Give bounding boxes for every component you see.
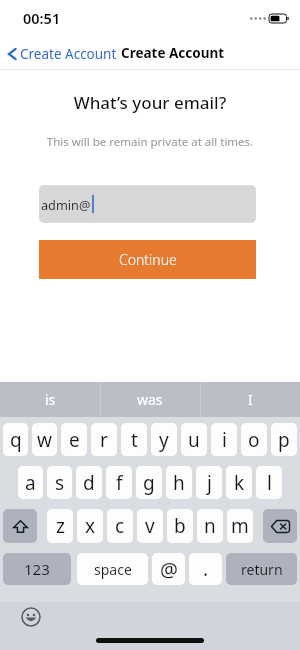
button[interactable]: space	[77, 553, 148, 585]
button[interactable]: Shift	[3, 509, 37, 543]
staticText: m	[231, 513, 249, 539]
staticText: a	[25, 470, 36, 496]
staticText: admin@	[41, 196, 91, 213]
staticText: What’s your email?	[0, 91, 300, 114]
button[interactable]: p	[271, 423, 297, 456]
staticText: h	[173, 470, 185, 496]
button[interactable]: is	[0, 382, 100, 417]
staticText: This will be remain private at all times…	[0, 134, 300, 150]
staticText: r	[100, 427, 108, 453]
staticText: space	[94, 560, 132, 579]
staticText: i	[222, 427, 227, 453]
staticText: w	[37, 427, 52, 453]
button[interactable]: was	[100, 382, 200, 417]
button[interactable]: c	[107, 509, 133, 543]
button[interactable]: e	[61, 423, 87, 456]
button[interactable]: return	[226, 553, 297, 585]
staticText: e	[69, 427, 80, 453]
button[interactable]: n	[197, 509, 223, 543]
button[interactable]: Continue	[39, 240, 256, 279]
button[interactable]: k	[226, 466, 252, 499]
staticText: Create Account	[121, 44, 225, 62]
button[interactable]: s	[47, 466, 72, 499]
button[interactable]: v	[137, 509, 163, 543]
button[interactable]: m	[227, 509, 253, 543]
button[interactable]: a	[18, 466, 43, 499]
staticText: s	[55, 470, 65, 496]
staticText: z	[56, 513, 65, 539]
staticText: p	[278, 427, 290, 453]
button[interactable]: f	[106, 466, 132, 499]
staticText: Continue	[119, 250, 177, 269]
staticText: v	[145, 513, 155, 539]
button[interactable]: b	[167, 509, 193, 543]
button[interactable]: Delete	[263, 509, 297, 543]
button[interactable]: r	[91, 423, 117, 456]
staticText: Create Account	[20, 45, 117, 63]
button[interactable]: x	[77, 509, 103, 543]
staticText: return	[241, 560, 283, 579]
staticText: is	[45, 390, 56, 409]
staticText: 00:51	[23, 8, 61, 28]
button[interactable]: d	[76, 466, 102, 499]
button[interactable]: I	[200, 382, 300, 417]
button[interactable]: @	[152, 553, 185, 585]
button[interactable]: w	[32, 423, 57, 456]
staticText: l	[267, 470, 272, 496]
button[interactable]: .	[189, 553, 222, 585]
staticText: t	[131, 427, 138, 453]
button[interactable]: admin@	[39, 185, 256, 223]
button[interactable]: g	[136, 466, 162, 499]
staticText: .	[203, 556, 209, 582]
button[interactable]: 123	[3, 553, 71, 585]
button[interactable]: u	[181, 423, 207, 456]
staticText: y	[159, 427, 169, 453]
staticText: k	[234, 470, 245, 496]
button[interactable]: Emoji keyboard	[21, 607, 41, 627]
staticText: I	[248, 390, 253, 409]
button[interactable]: t	[121, 423, 147, 456]
staticText: x	[85, 513, 96, 539]
staticText: q	[10, 427, 22, 453]
button[interactable]: Create Account	[0, 36, 121, 71]
button[interactable]: z	[47, 509, 73, 543]
staticText: b	[174, 513, 186, 539]
staticText: was	[137, 390, 163, 409]
staticText: c	[115, 513, 125, 539]
button[interactable]: y	[151, 423, 177, 456]
button[interactable]: h	[166, 466, 192, 499]
staticText: j	[207, 470, 212, 496]
staticText: 123	[24, 559, 50, 579]
staticText: g	[143, 470, 155, 496]
staticText: f	[116, 470, 123, 496]
button[interactable]: l	[256, 466, 282, 499]
staticText: d	[83, 470, 95, 496]
button[interactable]: i	[211, 423, 237, 456]
staticText: u	[188, 427, 200, 453]
staticText: @	[160, 556, 178, 583]
staticText: o	[248, 427, 260, 453]
button[interactable]: o	[241, 423, 267, 456]
button[interactable]: j	[196, 466, 222, 499]
button[interactable]: q	[3, 423, 28, 456]
staticText: n	[204, 513, 216, 539]
